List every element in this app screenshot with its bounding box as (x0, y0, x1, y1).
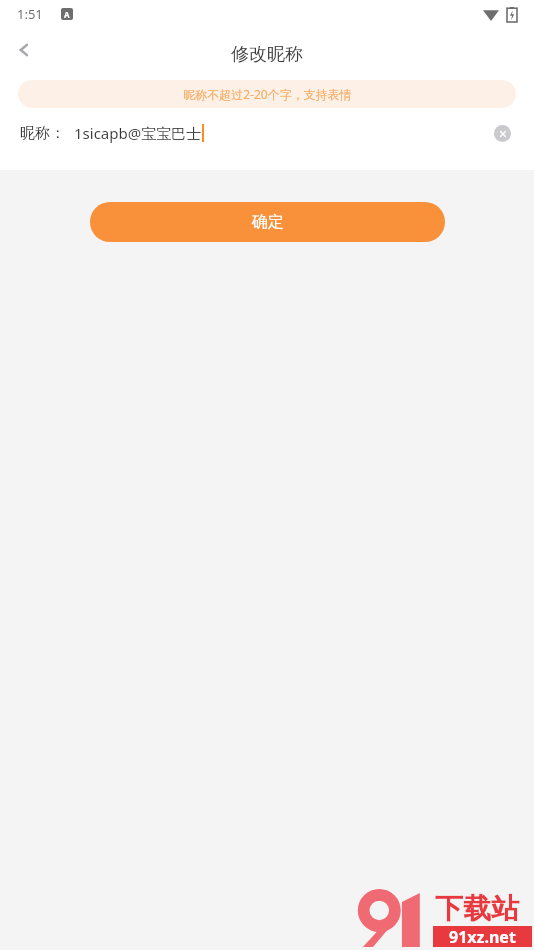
staticText: 91xz.net (449, 926, 516, 947)
button[interactable]: Back (2, 28, 46, 72)
button[interactable]: Clear text (486, 117, 518, 149)
staticText: A (64, 9, 70, 20)
staticText: 1:51 (17, 5, 43, 23)
staticText: 修改昵称 (231, 43, 303, 66)
staticText: 昵称不超过2-20个字，支持表情 (183, 86, 352, 102)
staticText: 确定 (252, 212, 284, 232)
staticText: 1sicapb@宝宝巴士 (74, 123, 202, 143)
staticText: 昵称： (20, 124, 65, 143)
staticText: 下载站 (435, 891, 519, 926)
button[interactable]: 确定 (90, 202, 445, 242)
